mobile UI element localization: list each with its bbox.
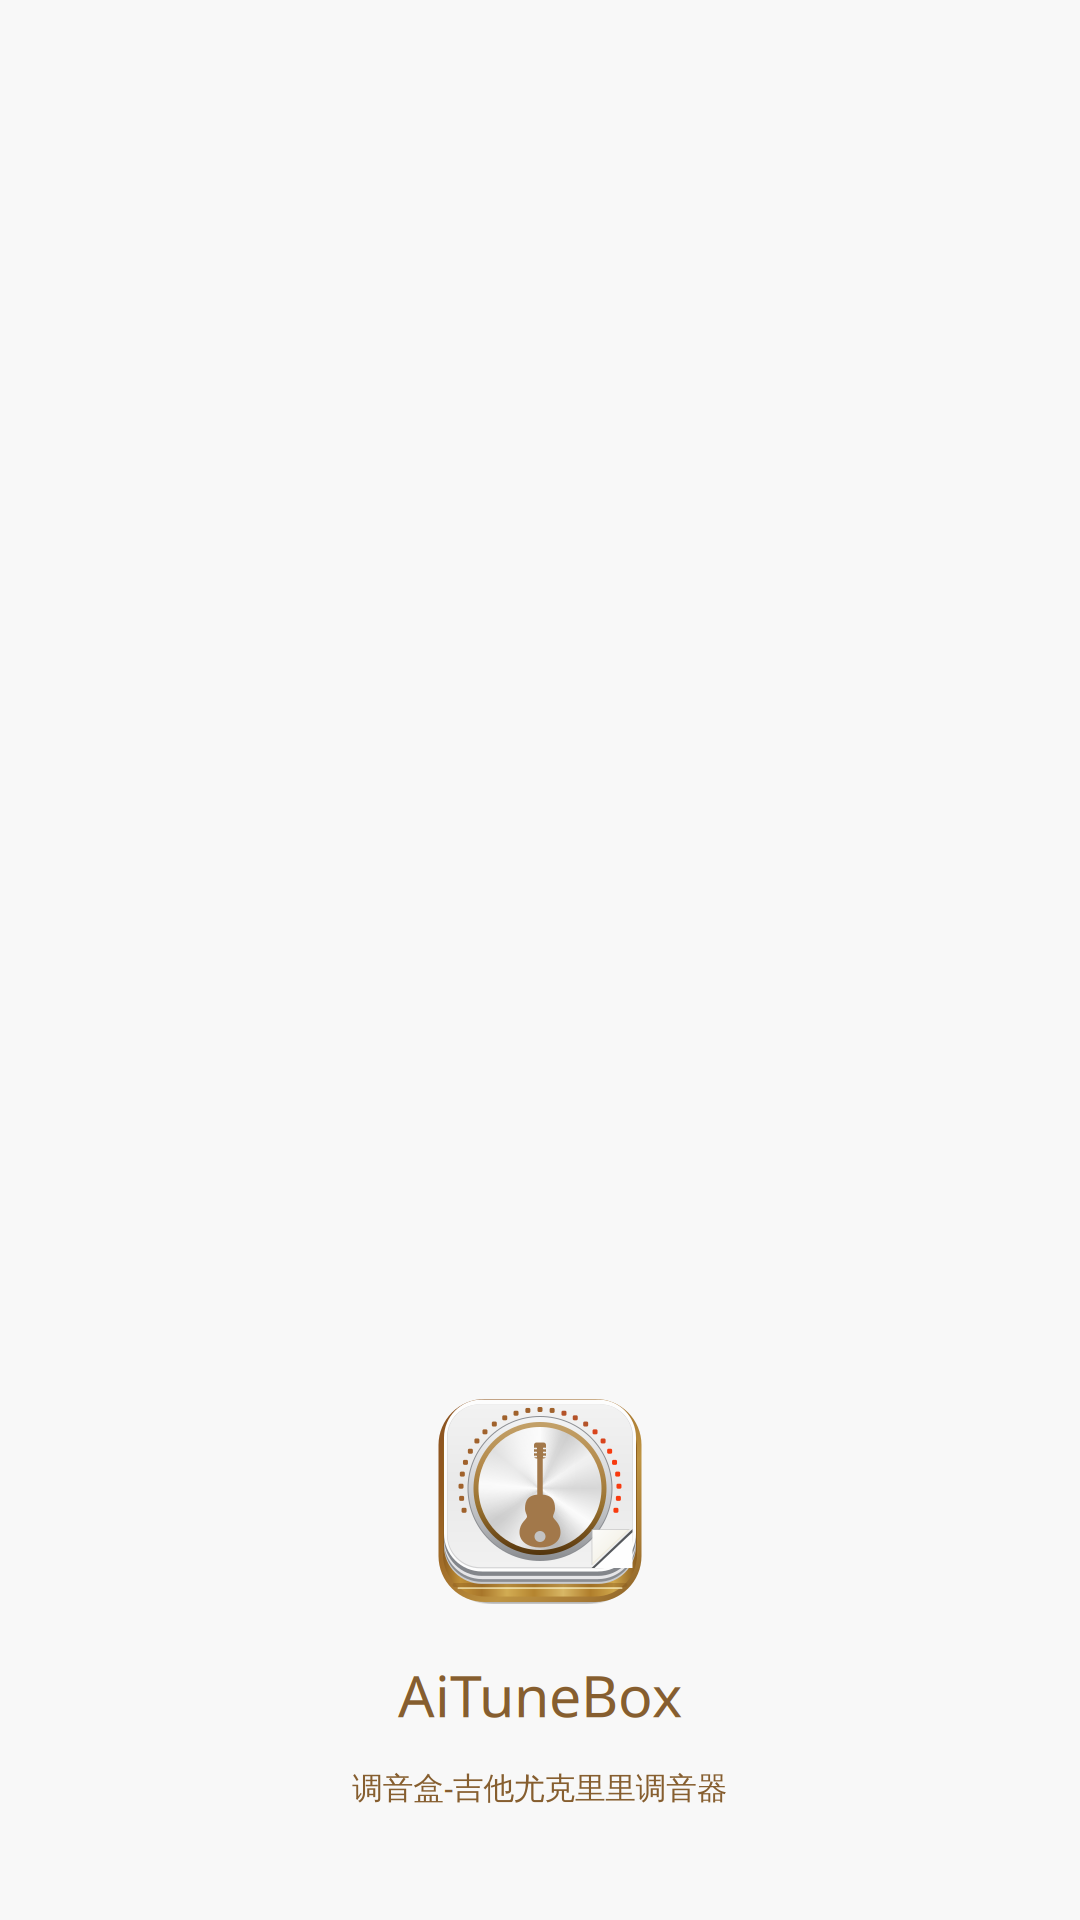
staticText: AiTuneBox [398, 1657, 682, 1733]
staticText: 调音盒-吉他尤克里里调音器 [352, 1767, 728, 1808]
